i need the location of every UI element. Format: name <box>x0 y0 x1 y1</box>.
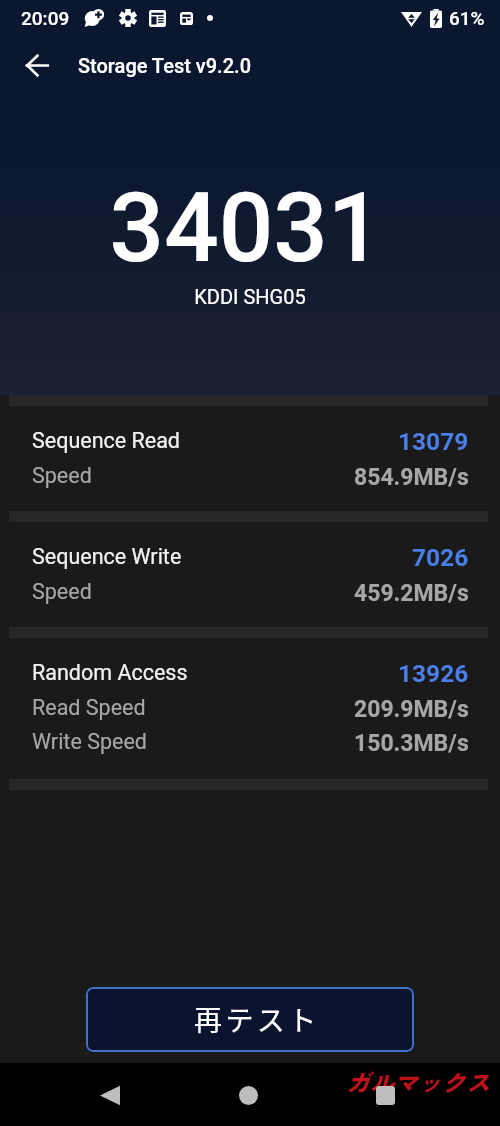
staticText: 13926 <box>398 659 469 688</box>
staticText: 61% <box>449 7 485 29</box>
staticText: Random Access <box>32 660 188 685</box>
staticText: KDDI SHG05 <box>0 285 500 308</box>
button[interactable]: Back <box>85 1070 135 1120</box>
staticText: ガルマックス <box>346 1064 490 1099</box>
staticText: 20:09 <box>21 7 70 29</box>
staticText: Speed <box>32 579 92 604</box>
staticText: 再テスト <box>194 999 320 1040</box>
staticText: 13079 <box>398 427 469 456</box>
staticText: 34031 <box>0 172 496 285</box>
staticText: 150.3MB/s <box>354 730 469 757</box>
staticText: Read Speed <box>32 695 146 720</box>
staticText: Storage Test v9.2.0 <box>78 54 252 77</box>
staticText: Sequence Write <box>32 544 182 569</box>
staticText: 209.9MB/s <box>354 696 469 723</box>
button[interactable]: Recent apps <box>360 1070 410 1120</box>
staticText: Write Speed <box>32 729 147 754</box>
staticText: 854.9MB/s <box>354 464 469 491</box>
staticText: 7026 <box>412 543 469 572</box>
button[interactable]: Random Access <box>0 638 500 779</box>
button[interactable]: Navigate up <box>14 42 60 88</box>
button[interactable]: Home <box>223 1070 273 1120</box>
staticText: Speed <box>32 463 92 488</box>
button[interactable]: Sequence Read <box>0 406 500 511</box>
button[interactable]: 再テスト <box>86 987 414 1052</box>
staticText: 459.2MB/s <box>354 580 469 607</box>
staticText: Sequence Read <box>32 428 180 453</box>
button[interactable]: Sequence Write <box>0 522 500 627</box>
